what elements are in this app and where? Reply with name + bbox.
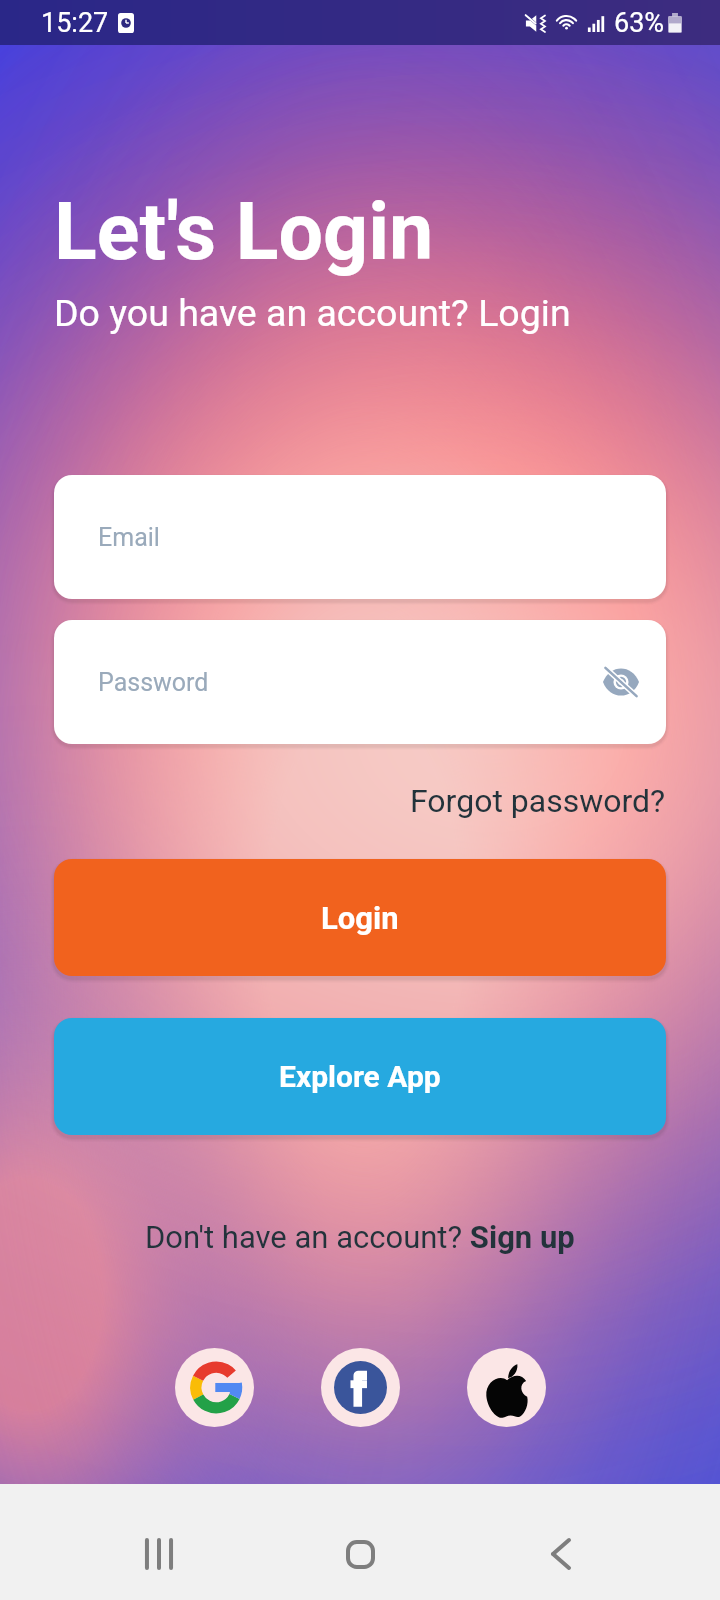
button[interactable]: Recent apps (115, 1510, 203, 1598)
button[interactable]: Forgot password? (410, 782, 666, 820)
staticText: 15:27 (41, 7, 109, 39)
button[interactable]: Sign in with Facebook (321, 1348, 400, 1427)
staticText: Explore App (279, 1059, 441, 1094)
staticText: Let's Login (54, 186, 434, 279)
staticText: Password (98, 668, 209, 697)
button[interactable]: Home (316, 1510, 404, 1598)
button[interactable]: Sign in with Apple (467, 1348, 546, 1427)
staticText: 63% (614, 7, 665, 39)
button[interactable]: Show password (593, 654, 649, 710)
staticText: Don't have an account? Sign up (145, 1219, 575, 1255)
staticText: Do you have an account? Login (54, 291, 571, 335)
button[interactable]: Don't have an account? Sign up (145, 1219, 575, 1255)
button[interactable]: Back (517, 1510, 605, 1598)
button[interactable]: Email (54, 475, 666, 599)
staticText: Forgot password? (410, 782, 666, 820)
button[interactable]: Password (54, 620, 666, 744)
staticText: Login (321, 900, 399, 936)
button[interactable]: Login (54, 859, 666, 976)
staticText: Email (98, 523, 160, 552)
button[interactable]: Explore App (54, 1018, 666, 1135)
button[interactable]: Sign in with Google (175, 1348, 254, 1427)
